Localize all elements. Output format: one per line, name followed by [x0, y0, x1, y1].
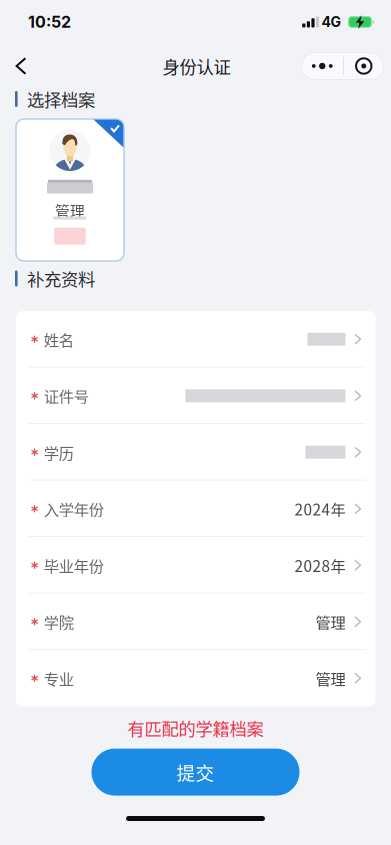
button[interactable]: 学历	[16, 424, 375, 480]
staticText: 提交	[176, 759, 214, 786]
staticText: 管理	[315, 667, 345, 689]
staticText: 管理	[55, 200, 85, 221]
staticText: 2024年	[294, 498, 345, 520]
staticText: 证件号	[44, 385, 89, 407]
button[interactable]: 毕业年份	[16, 537, 375, 593]
staticText: 管理	[315, 611, 345, 633]
button[interactable]: 管理	[16, 119, 124, 261]
button[interactable]: 入学年份	[16, 480, 375, 537]
staticText: 毕业年份	[44, 554, 104, 576]
staticText: 补充资料	[27, 266, 95, 291]
button[interactable]: 学院	[16, 593, 375, 650]
staticText: 有匹配的学籍档案	[127, 715, 263, 741]
button[interactable]: 姓名	[16, 311, 375, 367]
button[interactable]: More	[301, 52, 343, 79]
staticText: 入学年份	[44, 498, 104, 520]
staticText: 专业	[44, 667, 74, 689]
staticText: 学院	[44, 611, 74, 633]
staticText: 选择档案	[27, 86, 95, 112]
button[interactable]: 专业	[16, 650, 375, 706]
staticText: 身份认证	[162, 53, 230, 79]
staticText: 2028年	[294, 554, 345, 576]
button[interactable]: 证件号	[16, 367, 375, 424]
button[interactable]: Close	[344, 52, 383, 79]
staticText: 4G	[322, 13, 342, 30]
button[interactable]: Back	[5, 44, 37, 88]
staticText: 姓名	[44, 328, 74, 350]
staticText: 10:52	[28, 12, 71, 32]
staticText: 学历	[44, 441, 74, 463]
button[interactable]: 提交	[91, 749, 299, 796]
